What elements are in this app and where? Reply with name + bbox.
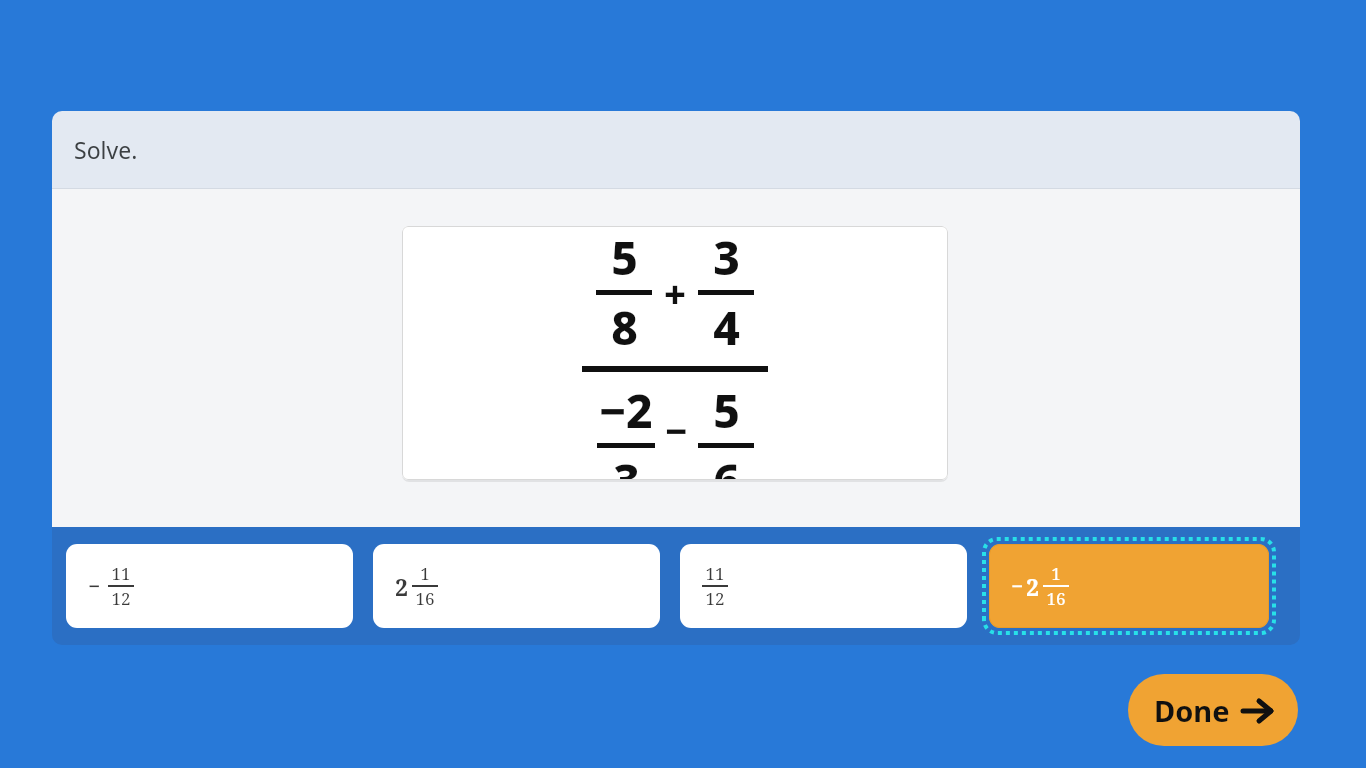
staticText: 4 bbox=[713, 296, 740, 359]
staticText: 1 bbox=[1051, 562, 1061, 585]
staticText: 2 bbox=[395, 571, 408, 602]
button[interactable]: Done bbox=[1128, 674, 1298, 746]
staticText: − bbox=[1011, 572, 1024, 601]
staticText: + bbox=[664, 267, 686, 319]
staticText: Solve. bbox=[74, 134, 138, 165]
staticText: 16 bbox=[415, 587, 435, 610]
staticText: 16 bbox=[1046, 587, 1066, 610]
button[interactable]: 2 bbox=[373, 544, 660, 628]
staticText: 5 bbox=[713, 379, 740, 442]
button[interactable]: 11 bbox=[680, 544, 967, 628]
staticText: 5 bbox=[611, 226, 638, 289]
staticText: 3 bbox=[713, 226, 740, 289]
staticText: 6 bbox=[713, 449, 740, 480]
button[interactable]: − bbox=[989, 544, 1269, 628]
staticText: 8 bbox=[611, 296, 638, 359]
staticText: − bbox=[88, 572, 101, 601]
staticText: 11 bbox=[705, 562, 725, 585]
staticText: 3 bbox=[613, 449, 640, 480]
button[interactable]: − bbox=[66, 544, 353, 628]
staticText: 12 bbox=[705, 587, 725, 610]
staticText: 12 bbox=[111, 587, 131, 610]
other: Next bbox=[1243, 699, 1273, 723]
staticText: Done bbox=[1154, 691, 1230, 730]
staticText: 2 bbox=[1026, 571, 1039, 602]
staticText: 1 bbox=[420, 562, 430, 585]
staticText: 11 bbox=[111, 562, 131, 585]
staticText: − bbox=[665, 404, 688, 456]
staticText: −2 bbox=[599, 379, 653, 442]
